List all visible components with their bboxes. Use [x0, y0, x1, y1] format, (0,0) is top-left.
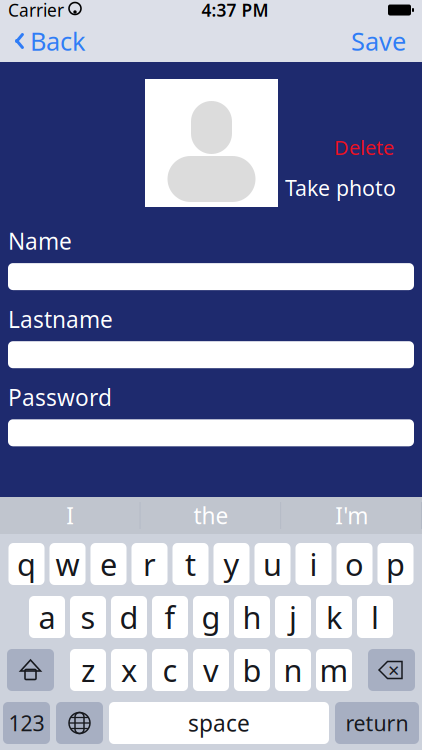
- staticText: a: [38, 597, 55, 637]
- button[interactable]: [8, 263, 414, 290]
- button[interactable]: 123: [3, 702, 50, 744]
- staticText: Back: [30, 24, 86, 58]
- button[interactable]: l: [357, 596, 393, 638]
- staticText: [63, 0, 69, 25]
- button[interactable]: f: [152, 596, 188, 638]
- staticText: I'm: [335, 500, 368, 530]
- button[interactable]: z: [70, 649, 106, 691]
- button[interactable]: h: [234, 596, 270, 638]
- staticText: i: [309, 544, 317, 584]
- staticText: c: [162, 650, 177, 690]
- staticText: Delete: [334, 134, 394, 161]
- staticText: Name: [8, 226, 72, 256]
- button[interactable]: space: [109, 702, 329, 744]
- button[interactable]: u: [254, 543, 290, 585]
- staticText: Take photo: [285, 174, 396, 202]
- staticText: space: [188, 708, 250, 738]
- button[interactable]: g: [193, 596, 229, 638]
- button[interactable]: [8, 341, 414, 368]
- staticText: 123: [8, 709, 44, 737]
- button[interactable]: y: [213, 543, 249, 585]
- staticText: Password: [8, 382, 112, 412]
- button[interactable]: i: [295, 543, 331, 585]
- staticText: d: [119, 597, 138, 637]
- staticText: p: [386, 544, 405, 584]
- staticText: r: [143, 544, 156, 584]
- button[interactable]: k: [316, 596, 352, 638]
- staticText: v: [203, 650, 219, 690]
- staticText: e: [100, 544, 117, 584]
- staticText: j: [289, 597, 297, 637]
- button[interactable]: Profile photo: [145, 79, 278, 207]
- button[interactable]: t: [172, 543, 208, 585]
- button[interactable]: I'm: [281, 497, 422, 534]
- button[interactable]: r: [131, 543, 167, 585]
- button[interactable]: a: [29, 596, 65, 638]
- button[interactable]: I: [0, 497, 141, 534]
- staticText: y: [223, 544, 239, 584]
- button[interactable]: o: [336, 543, 372, 585]
- button[interactable]: s: [70, 596, 106, 638]
- button[interactable]: x: [111, 649, 147, 691]
- button[interactable]: Shift: [7, 649, 54, 691]
- staticText: k: [326, 597, 342, 637]
- button[interactable]: e: [90, 543, 126, 585]
- staticText: return: [345, 709, 408, 737]
- staticText: g: [201, 597, 220, 637]
- button[interactable]: c: [152, 649, 188, 691]
- staticText: f: [164, 597, 175, 637]
- staticText: z: [81, 650, 95, 690]
- button[interactable]: Next keyboard: [56, 702, 103, 744]
- button[interactable]: Delete: [368, 649, 415, 691]
- staticText: o: [345, 544, 364, 584]
- staticText: m: [319, 650, 348, 690]
- button[interactable]: Back: [4, 18, 96, 64]
- button[interactable]: w: [49, 543, 85, 585]
- staticText: q: [17, 544, 36, 584]
- button[interactable]: p: [377, 543, 413, 585]
- button[interactable]: return: [335, 702, 419, 744]
- staticText: n: [283, 650, 302, 690]
- button[interactable]: Take photo: [285, 174, 396, 202]
- button[interactable]: q: [8, 543, 44, 585]
- staticText: w: [55, 544, 79, 584]
- staticText: Carrier: [8, 0, 64, 21]
- button[interactable]: m: [316, 649, 352, 691]
- button[interactable]: the: [141, 497, 281, 534]
- staticText: h: [242, 597, 261, 637]
- staticText: I: [66, 500, 74, 530]
- button[interactable]: d: [111, 596, 147, 638]
- staticText: t: [185, 544, 196, 584]
- button[interactable]: Save: [339, 18, 418, 64]
- button[interactable]: v: [193, 649, 229, 691]
- button[interactable]: j: [275, 596, 311, 638]
- staticText: 4:37 PM: [201, 0, 268, 21]
- staticText: b: [242, 650, 261, 690]
- staticText: l: [371, 597, 379, 637]
- button[interactable]: b: [234, 649, 270, 691]
- button[interactable]: [8, 419, 414, 446]
- button[interactable]: n: [275, 649, 311, 691]
- staticText: s: [80, 597, 95, 637]
- staticText: Save: [351, 24, 406, 58]
- button[interactable]: Delete: [328, 131, 400, 164]
- staticText: Lastname: [8, 304, 113, 334]
- staticText: x: [121, 650, 137, 690]
- staticText: ×: [388, 657, 399, 683]
- staticText: the: [193, 500, 228, 530]
- staticText: u: [263, 544, 282, 584]
